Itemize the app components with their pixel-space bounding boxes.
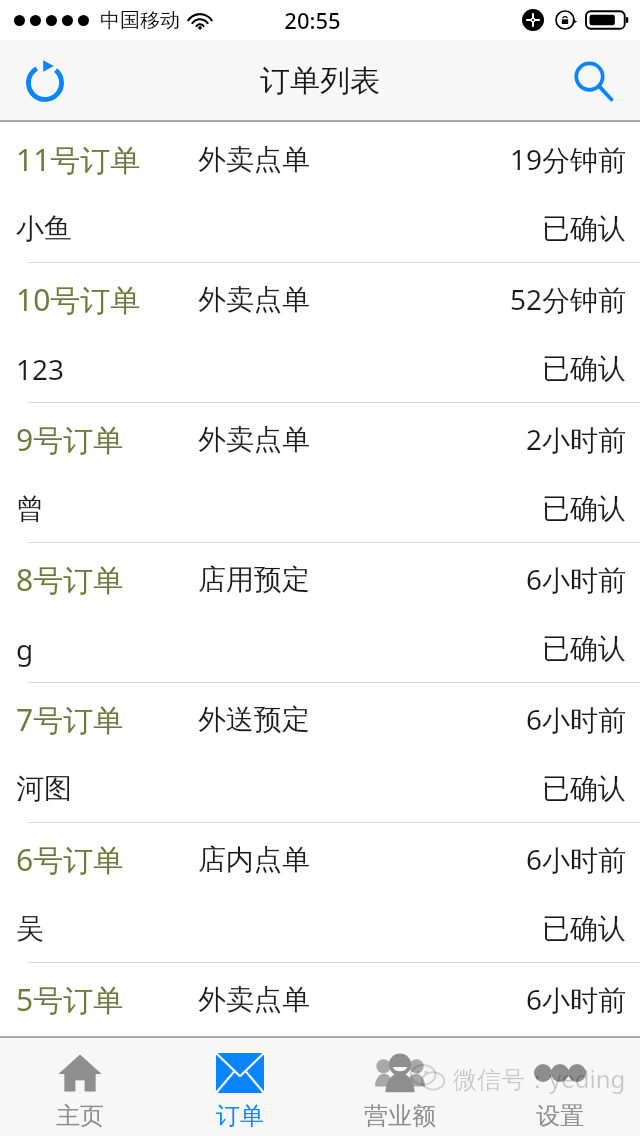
button[interactable]: 11号订单 [0,122,640,262]
staticText: 7号订单 [16,699,124,740]
staticText: 微信号：yeding [453,1062,626,1095]
staticText: 中国移动 [100,8,180,33]
staticText: 8号订单 [16,559,124,600]
staticText: 已确认 [542,491,626,526]
staticText: 已确认 [542,211,626,246]
staticText: 已确认 [542,351,626,386]
button[interactable]: 设置 [480,1036,640,1136]
button[interactable]: 7号订单 [0,682,640,822]
staticText: 5号订单 [16,979,124,1020]
staticText: 外送预定 [198,702,310,737]
staticText: 6小时前 [525,560,626,598]
staticText: 订单列表 [260,62,380,100]
button[interactable]: 营业额 [320,1036,480,1136]
staticText: 6号订单 [16,839,124,880]
button[interactable]: 搜索 [562,50,624,112]
staticText: 10号订单 [16,279,141,320]
button[interactable]: 订单 [160,1036,320,1136]
staticText: 店内点单 [198,842,310,877]
staticText: 外卖点单 [198,422,310,457]
staticText: 19分钟前 [509,140,626,178]
staticText: g [16,630,34,668]
staticText: 曾 [16,491,44,526]
button[interactable]: 5号订单 [0,962,640,1036]
staticText: 订单 [216,1101,264,1131]
staticText: 123 [16,350,65,388]
button[interactable]: 主页 [0,1036,160,1136]
staticText: 6小时前 [525,700,626,738]
button[interactable]: 9号订单 [0,402,640,542]
staticText: 52分钟前 [509,280,626,318]
staticText: 已确认 [542,631,626,666]
staticText: 设置 [536,1101,584,1131]
staticText: 营业额 [364,1101,436,1131]
staticText: 吴 [16,911,44,946]
staticText: 外卖点单 [198,282,310,317]
staticText: 2小时前 [525,420,626,458]
staticText: 河图 [16,771,72,806]
staticText: 已确认 [542,771,626,806]
staticText: 小鱼 [16,211,72,246]
button[interactable]: 6号订单 [0,822,640,962]
staticText: 6小时前 [525,980,626,1018]
staticText: 11号订单 [16,139,141,180]
staticText: 外卖点单 [198,142,310,177]
staticText: 20:55 [284,5,341,35]
staticText: 已确认 [542,911,626,946]
staticText: 外卖点单 [198,982,310,1017]
staticText: 6小时前 [525,840,626,878]
button[interactable]: 刷新 [14,50,76,112]
button[interactable]: 8号订单 [0,542,640,682]
button[interactable]: 10号订单 [0,262,640,402]
staticText: 9号订单 [16,419,124,460]
staticText: 店用预定 [198,562,310,597]
staticText: 主页 [56,1101,104,1131]
